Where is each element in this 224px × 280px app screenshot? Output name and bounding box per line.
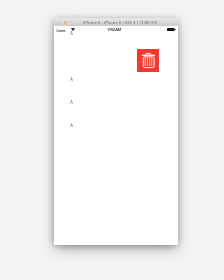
staticText: A [70,122,73,128]
button[interactable]: A [70,122,73,128]
staticText: A [70,30,73,36]
button[interactable]: A [70,99,73,105]
staticText: iPhone 6 - iPhone 6 / iOS 9.1 (13B137) [83,20,158,26]
staticText: 11:50 AM [107,27,121,33]
button[interactable]: Delete [137,49,159,72]
button[interactable]: A [70,30,73,36]
staticText: A [70,99,73,105]
staticText: A [70,76,73,82]
button[interactable]: A [70,76,73,82]
staticText: Carrier [56,27,66,33]
